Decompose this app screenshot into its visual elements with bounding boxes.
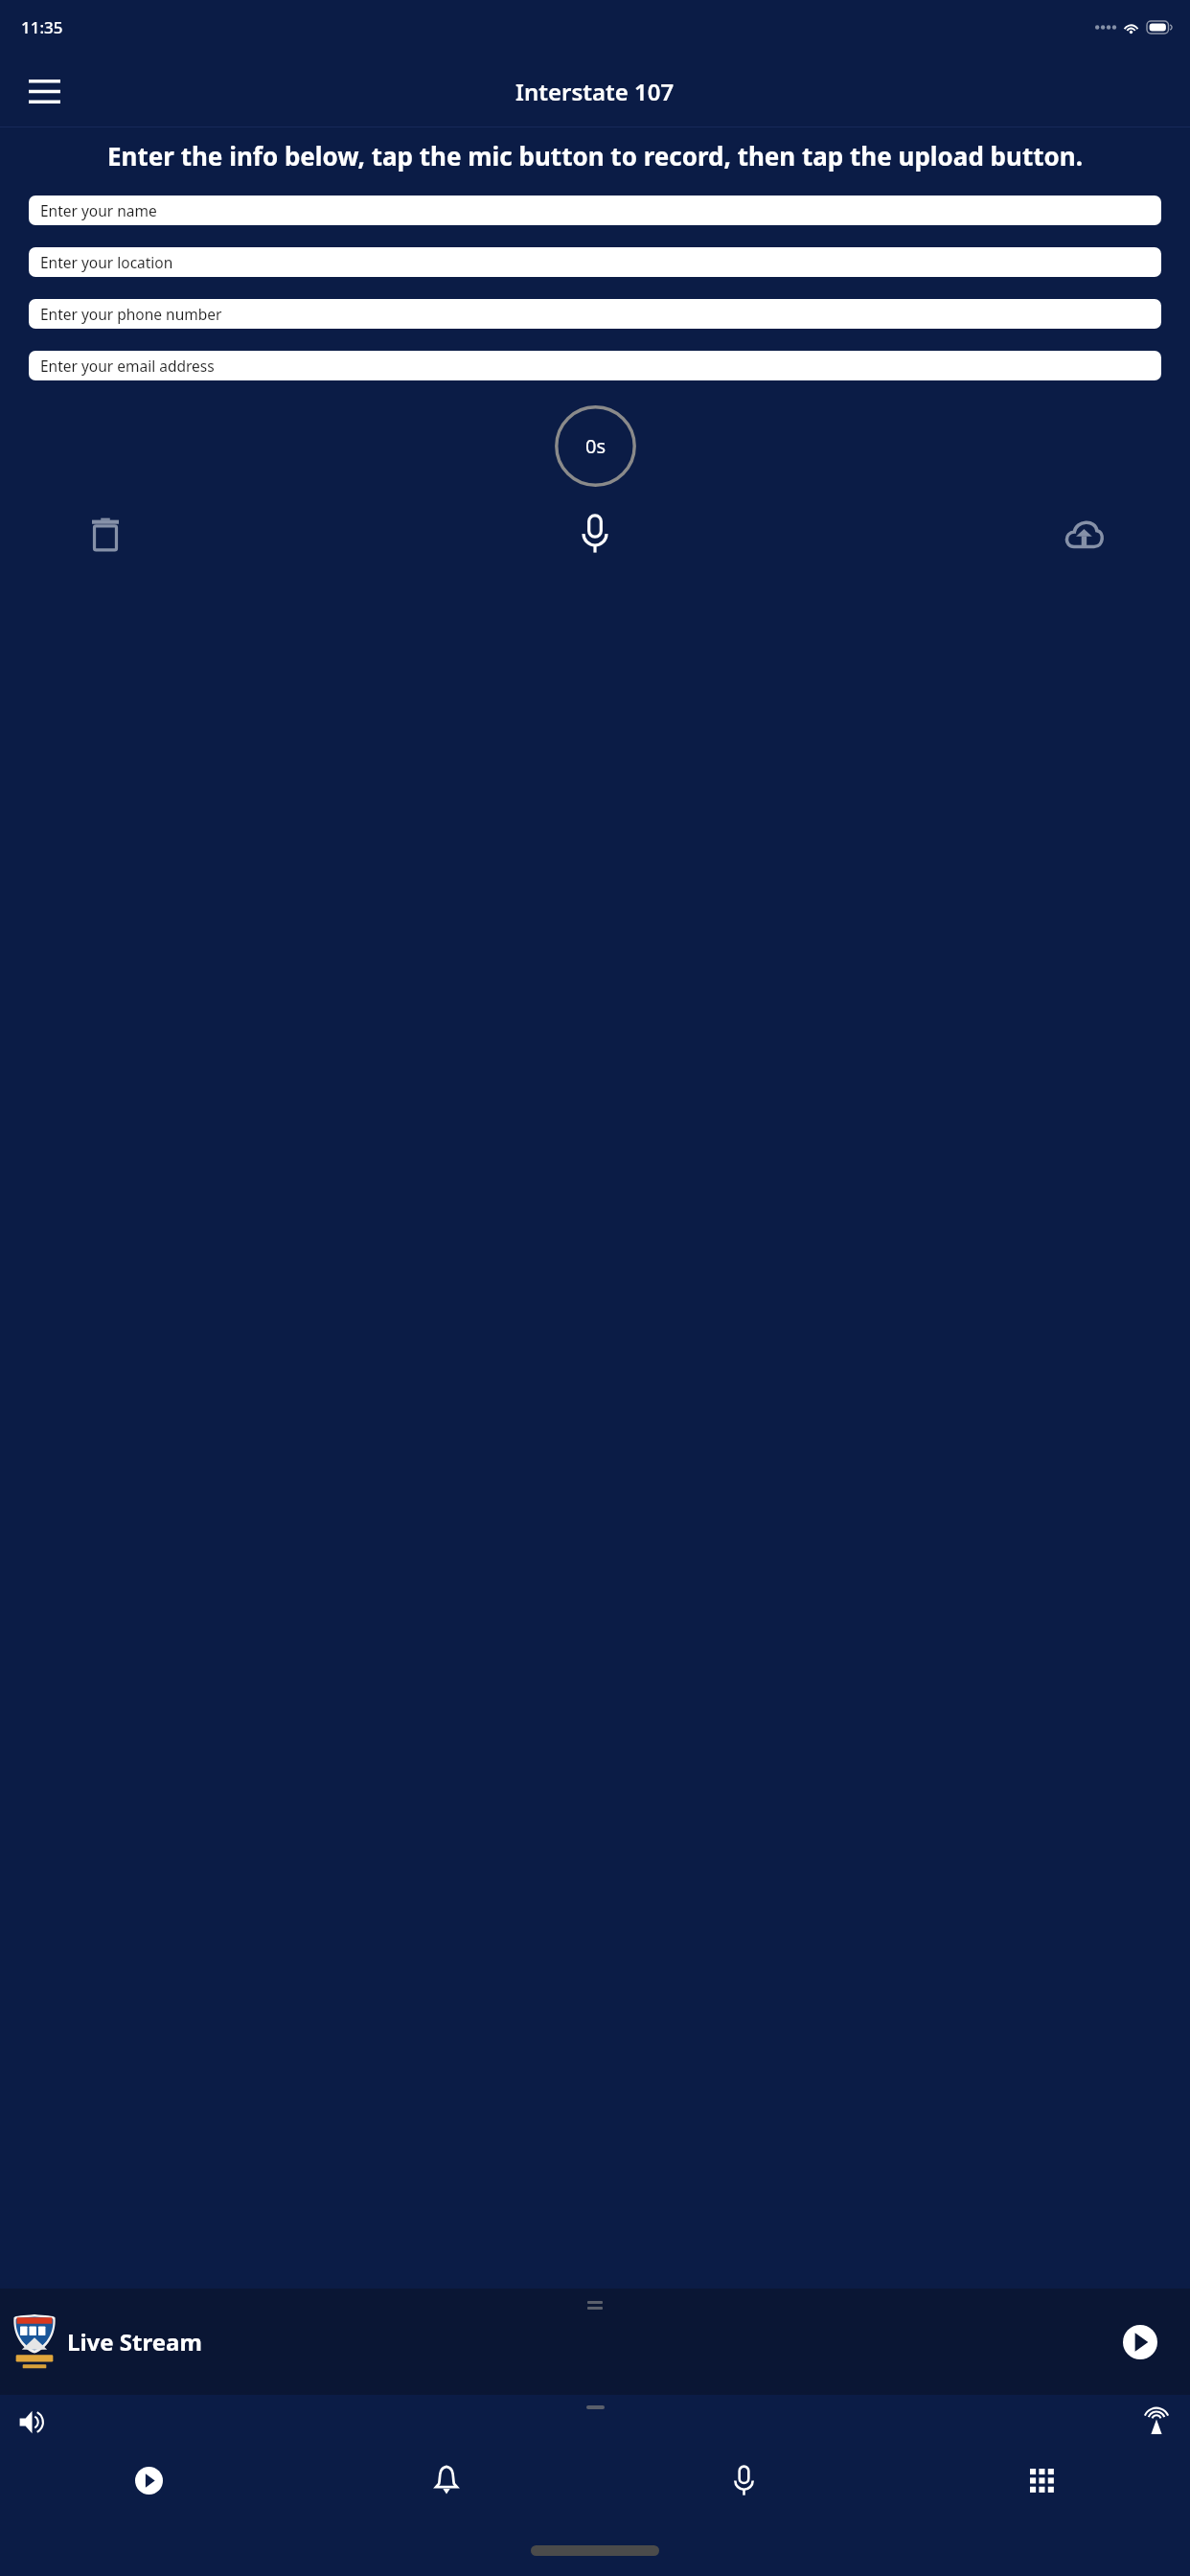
button[interactable]: Record	[566, 505, 624, 563]
button[interactable]: Microphone	[706, 2453, 781, 2507]
staticText: Enter the info below, tap the mic button…	[36, 139, 1154, 172]
staticText: Enter your email address	[40, 356, 215, 376]
button[interactable]: Play	[1115, 2317, 1165, 2367]
button[interactable]: Alerts	[409, 2453, 484, 2507]
button[interactable]: Play	[111, 2453, 186, 2507]
button[interactable]: Delete recording	[79, 507, 132, 561]
button[interactable]: Live Stream	[0, 2288, 1190, 2395]
button[interactable]: Upload	[1056, 506, 1111, 562]
button[interactable]: Enter your phone number	[29, 299, 1161, 329]
staticText: Enter your phone number	[40, 304, 222, 324]
button[interactable]: Enter your email address	[29, 351, 1161, 380]
button[interactable]: More	[1004, 2453, 1079, 2507]
staticText: Enter your name	[40, 200, 157, 220]
button[interactable]: Volume	[8, 2396, 59, 2448]
button[interactable]: Cast	[1131, 2396, 1182, 2448]
staticText: Interstate 107	[515, 76, 675, 107]
staticText: Enter your location	[40, 252, 173, 272]
staticText: 11:35	[21, 16, 63, 38]
staticText: Live Stream	[67, 2326, 202, 2357]
button[interactable]: Menu	[17, 64, 71, 118]
button[interactable]: Recording timer	[555, 405, 636, 487]
button[interactable]: Enter your name	[29, 195, 1161, 225]
button[interactable]: Enter your location	[29, 247, 1161, 277]
staticText: 0s	[585, 433, 606, 459]
